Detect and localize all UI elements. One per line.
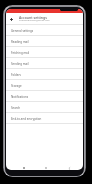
staticText: End-to-end encryption: [11, 117, 42, 121]
button[interactable]: Folders: [6, 68, 83, 79]
button[interactable]: End-to-end encryption: [6, 112, 83, 123]
button[interactable]: Fetching mail: [6, 46, 83, 57]
button[interactable]: Reading mail: [6, 35, 83, 46]
button[interactable]: Search: [6, 101, 83, 112]
staticText: General settings: [11, 29, 34, 33]
button[interactable]: General settings: [6, 24, 83, 35]
button[interactable]: Recents: [18, 162, 30, 170]
staticText: Reading mail: [11, 40, 29, 44]
button[interactable]: Notifications: [6, 90, 83, 101]
staticText: Storage: [11, 84, 22, 88]
button[interactable]: Sending mail: [6, 57, 83, 68]
button[interactable]: Back: [63, 162, 75, 170]
staticText: Notifications: [11, 95, 29, 99]
staticText: Folders: [11, 73, 21, 77]
staticText: Search: [11, 106, 21, 110]
staticText: Fetching mail: [11, 51, 30, 55]
button[interactable]: Home: [40, 162, 52, 170]
button[interactable]: Add account: [8, 16, 14, 22]
button[interactable]: Storage: [6, 79, 83, 90]
staticText: yhenlang20305@gmail.com: [19, 18, 50, 21]
staticText: Sending mail: [11, 62, 29, 66]
staticText: Account settings: [19, 15, 47, 20]
